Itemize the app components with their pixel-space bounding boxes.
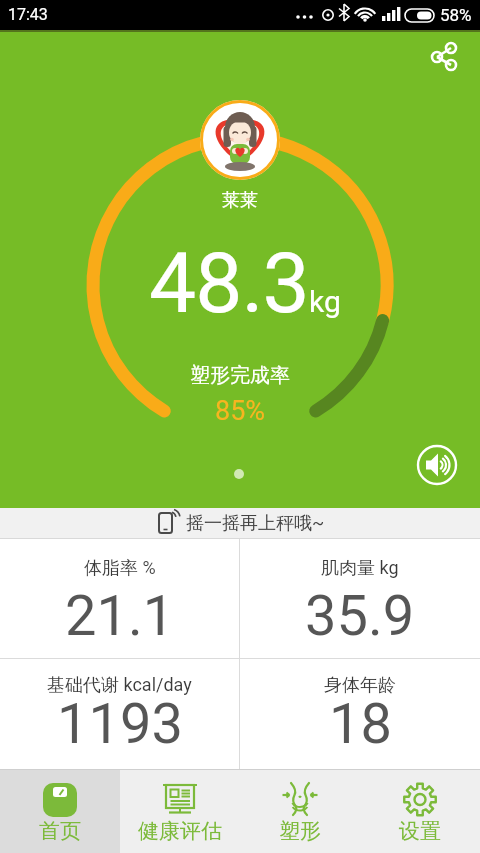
staticText: 35.9 [305,583,415,649]
staticText: 莱莱 [222,189,258,212]
button[interactable]: 体脂率 % [0,539,239,658]
staticText: 设置 [399,818,441,844]
button[interactable] [415,443,459,487]
staticText: kg [309,284,341,319]
button[interactable]: 基础代谢 kcal/day [0,659,239,769]
button[interactable] [426,40,462,76]
staticText: 塑形 [279,818,321,844]
staticText: 1193 [57,691,183,757]
staticText: 58% [440,5,472,25]
staticText: 基础代谢 kcal/day [47,674,192,697]
staticText: 85% [215,395,266,427]
staticText: 首页 [39,818,81,844]
staticText: 18 [329,691,392,757]
staticText: 身体年龄 [324,674,396,697]
staticText: 摇一摇再上秤哦~ [186,512,325,535]
staticText: 健康评估 [138,818,222,844]
button[interactable]: 塑形 [240,770,360,853]
button[interactable]: 设置 [360,770,480,853]
staticText: 塑形完成率 [190,363,290,388]
button[interactable]: 健康评估 [120,770,240,853]
staticText: 17:43 [8,5,48,24]
button[interactable]: 肌肉量 kg [240,539,480,658]
button[interactable]: 首页 [0,770,120,853]
staticText: 21.1 [65,583,175,649]
staticText: 48.3 [149,234,309,332]
button[interactable] [200,100,280,180]
button[interactable]: 身体年龄 [240,659,480,769]
button[interactable]: 摇一摇再上秤哦~ [0,508,480,538]
staticText: 体脂率 % [84,557,156,580]
staticText: 肌肉量 kg [321,557,399,580]
